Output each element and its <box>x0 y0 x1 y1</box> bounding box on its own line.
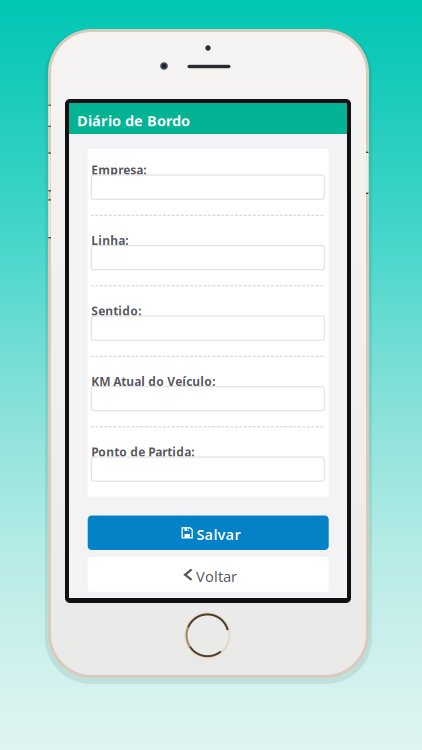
button[interactable]: Voltar <box>0 0 422 750</box>
button[interactable]: Diário de Bordo <box>0 0 422 750</box>
staticText: Ponto de Partida: <box>91 444 194 460</box>
staticText: Linha: <box>91 232 128 248</box>
button[interactable]: Salvar <box>0 0 422 750</box>
staticText: KM Atual do Veículo: <box>91 373 215 389</box>
staticText: Salvar <box>197 525 241 544</box>
staticText: Diário de Bordo <box>77 111 190 130</box>
staticText: Sentido: <box>91 303 141 319</box>
staticText: Voltar <box>196 566 237 586</box>
staticText: Empresa: <box>91 162 146 178</box>
